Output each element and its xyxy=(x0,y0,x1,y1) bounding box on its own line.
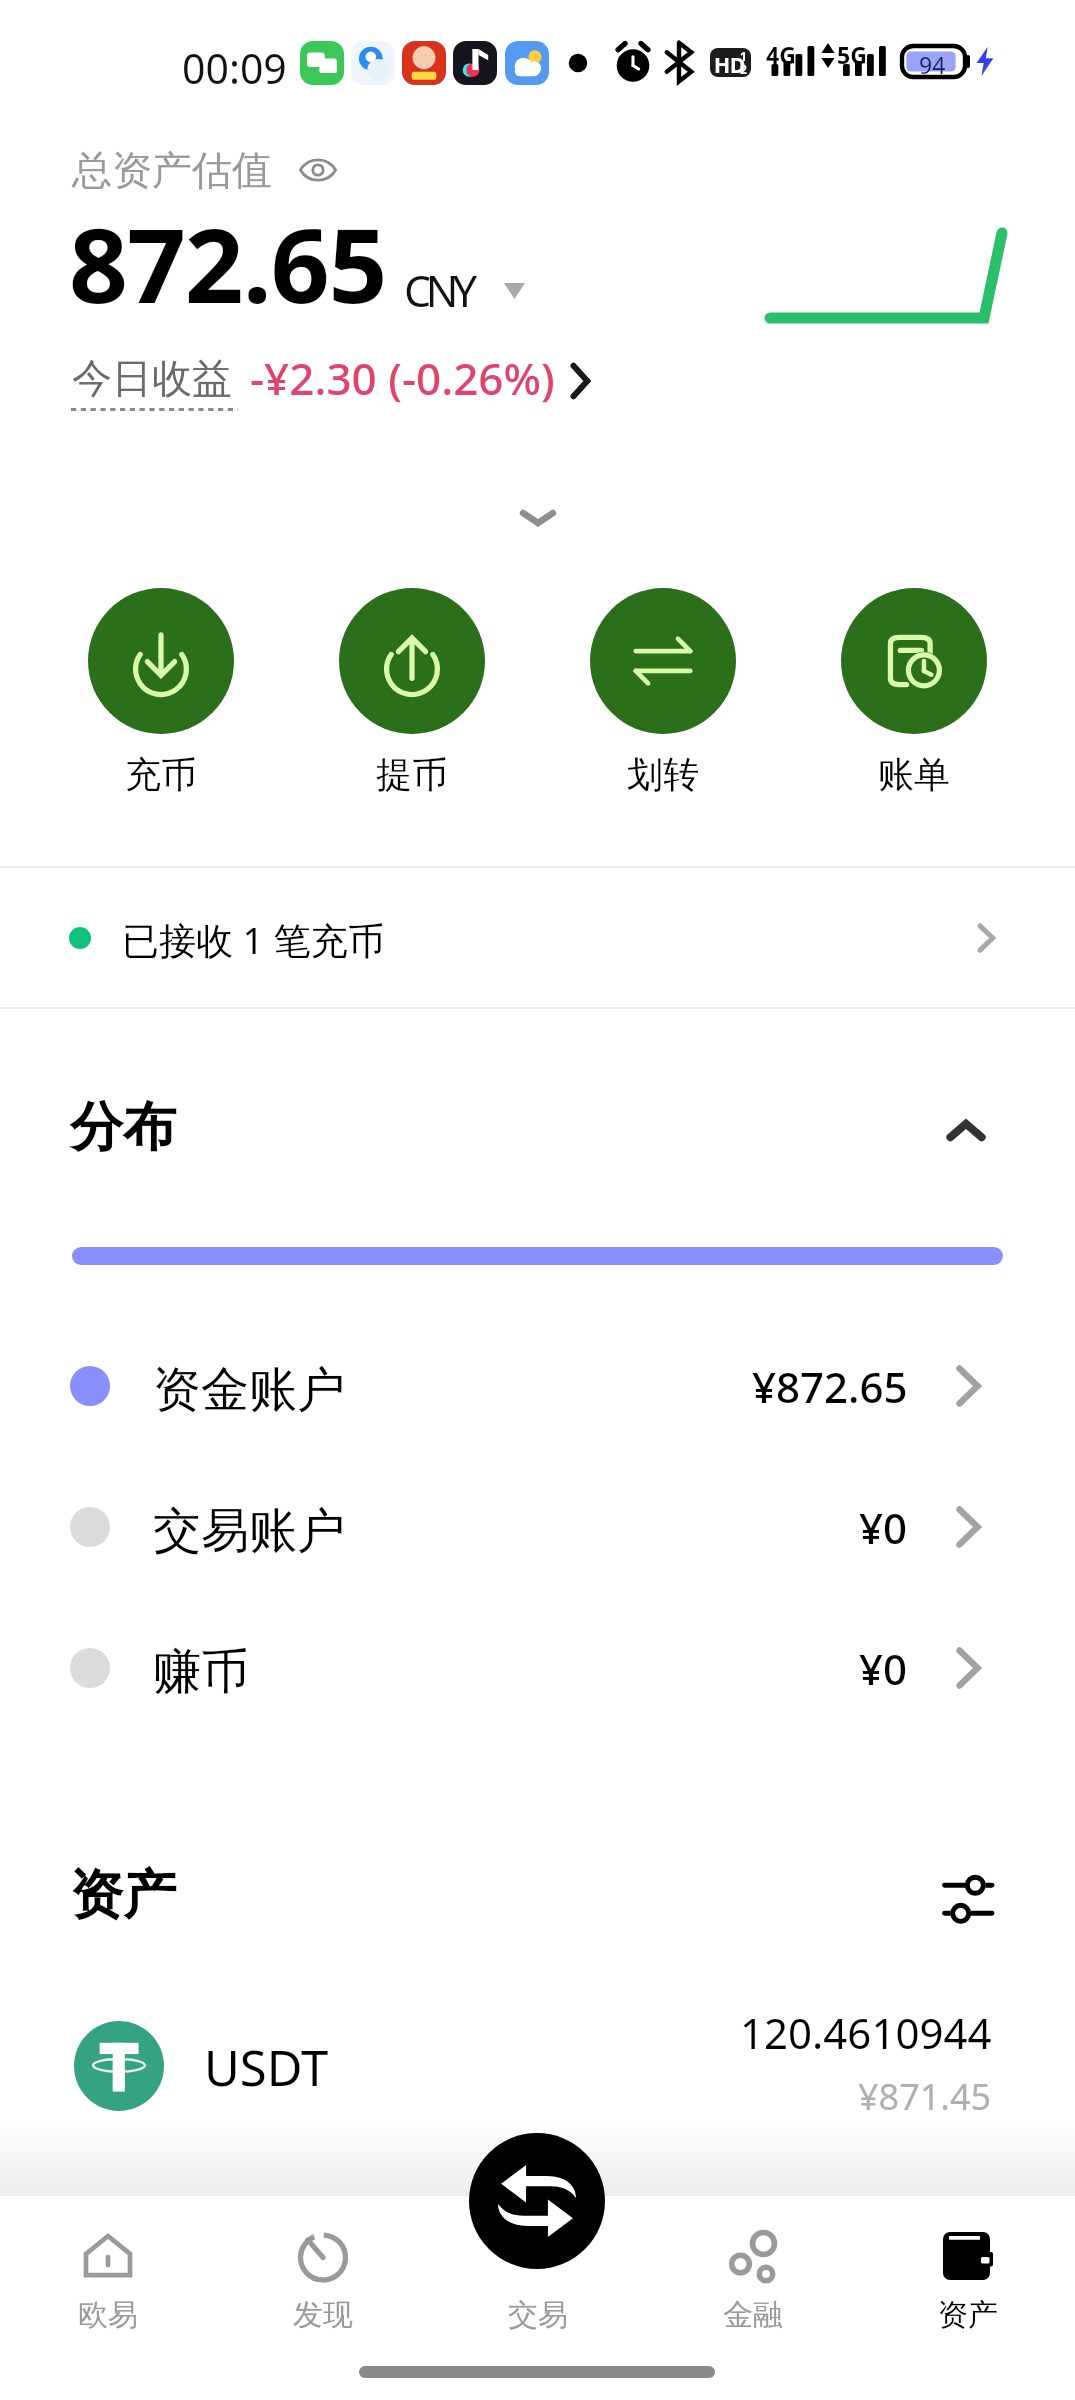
button[interactable]: 发现 xyxy=(215,2196,430,2356)
button[interactable]: 交易 xyxy=(430,2196,645,2356)
staticText: 00:09 xyxy=(182,40,287,96)
staticText: 充币 xyxy=(125,752,197,797)
button[interactable]: Trade xyxy=(469,2133,605,2269)
button[interactable]: 赚币 xyxy=(0,1598,1075,1738)
staticText: CNY xyxy=(404,261,472,320)
staticText: 5G xyxy=(837,39,867,70)
staticText: ¥0 xyxy=(859,1499,908,1556)
staticText: 120.4610944 xyxy=(740,2004,992,2058)
staticText: -¥2.30 (-0.26%) xyxy=(250,348,555,408)
button[interactable]: 资产 xyxy=(860,2196,1075,2356)
button[interactable]: 充币 xyxy=(73,588,249,798)
staticText: 分布 xyxy=(70,1094,176,1161)
button[interactable]: Collapse xyxy=(928,1100,1006,1164)
button[interactable]: Filter xyxy=(928,1862,1006,1938)
staticText: 交易账户 xyxy=(153,1501,345,1561)
staticText: 4G xyxy=(766,39,796,70)
staticText: ¥872.65 xyxy=(752,1358,908,1415)
staticText: 872.65 xyxy=(69,193,387,333)
button[interactable]: 已接收 1 笔充币 xyxy=(0,868,1075,1007)
button[interactable]: Expand xyxy=(490,488,586,548)
staticText: HD xyxy=(714,51,746,77)
staticText: 资产 xyxy=(70,1862,176,1929)
staticText: 赚币 xyxy=(153,1642,249,1702)
staticText: 94 xyxy=(919,49,946,80)
staticText: 欧易 xyxy=(78,2296,138,2334)
staticText: 1 xyxy=(740,48,747,64)
staticText: 划转 xyxy=(627,752,699,797)
staticText: 发现 xyxy=(293,2296,353,2334)
button[interactable]: 提币 xyxy=(324,588,500,798)
staticText: 已接收 1 笔充币 xyxy=(122,914,385,965)
staticText: ¥0 xyxy=(859,1640,908,1697)
staticText: 总资产估值 xyxy=(72,145,272,195)
button[interactable]: 资金账户 xyxy=(0,1316,1075,1456)
staticText: 金融 xyxy=(723,2296,783,2334)
button[interactable]: 欧易 xyxy=(0,2196,215,2356)
staticText: USDT xyxy=(204,2034,329,2101)
staticText: 资产 xyxy=(938,2296,998,2334)
staticText: 资金账户 xyxy=(153,1360,345,1420)
staticText: 2 xyxy=(740,61,747,77)
button[interactable]: USDT xyxy=(0,1996,1075,2136)
staticText: 提币 xyxy=(376,752,448,797)
button[interactable]: 交易账户 xyxy=(0,1457,1075,1597)
staticText: ¥871.45 xyxy=(858,2072,992,2121)
button[interactable]: 划转 xyxy=(575,588,751,798)
button[interactable]: 账单 xyxy=(826,588,1002,798)
staticText: 交易 xyxy=(508,2296,568,2334)
staticText: 今日收益 xyxy=(72,353,232,403)
staticText: 账单 xyxy=(878,752,950,797)
button[interactable]: 金融 xyxy=(645,2196,860,2356)
